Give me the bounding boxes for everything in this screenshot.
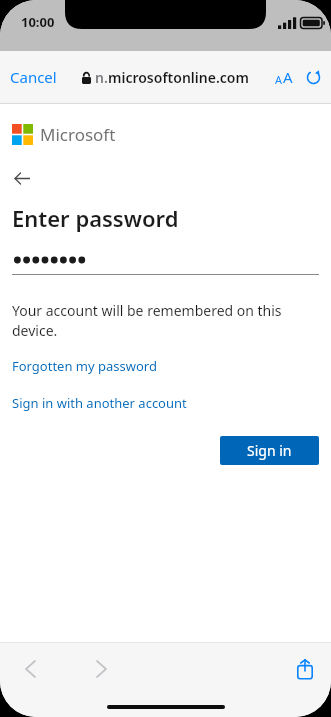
staticText: microsoftonline.com [108,68,249,87]
button[interactable]: n. [76,62,255,93]
staticText: Forgotten my password [12,357,157,375]
staticText: Enter password [12,203,179,233]
staticText: Sign in with another account [12,394,187,412]
button[interactable]: Share [287,651,323,687]
staticText: Sign in [247,441,292,460]
staticText: A [283,67,293,87]
button[interactable]: Back [12,651,48,687]
button[interactable]: Forgotten my password [12,355,157,377]
button[interactable]: Text size [270,61,298,93]
staticText: Microsoft [40,123,116,146]
button[interactable]: Cancel [0,61,67,93]
button[interactable]: Reload [298,64,329,91]
staticText: Cancel [10,67,57,87]
staticText: A [275,72,283,87]
button[interactable] [12,252,319,275]
staticText: Your account will be remembered on this … [12,301,319,340]
button[interactable]: Back [12,168,32,189]
button[interactable]: Sign in [220,436,319,465]
button[interactable]: Sign in with another account [12,392,187,414]
button[interactable]: Forward [83,651,119,687]
staticText: n. [95,68,108,87]
staticText: 10:00 [21,13,55,31]
